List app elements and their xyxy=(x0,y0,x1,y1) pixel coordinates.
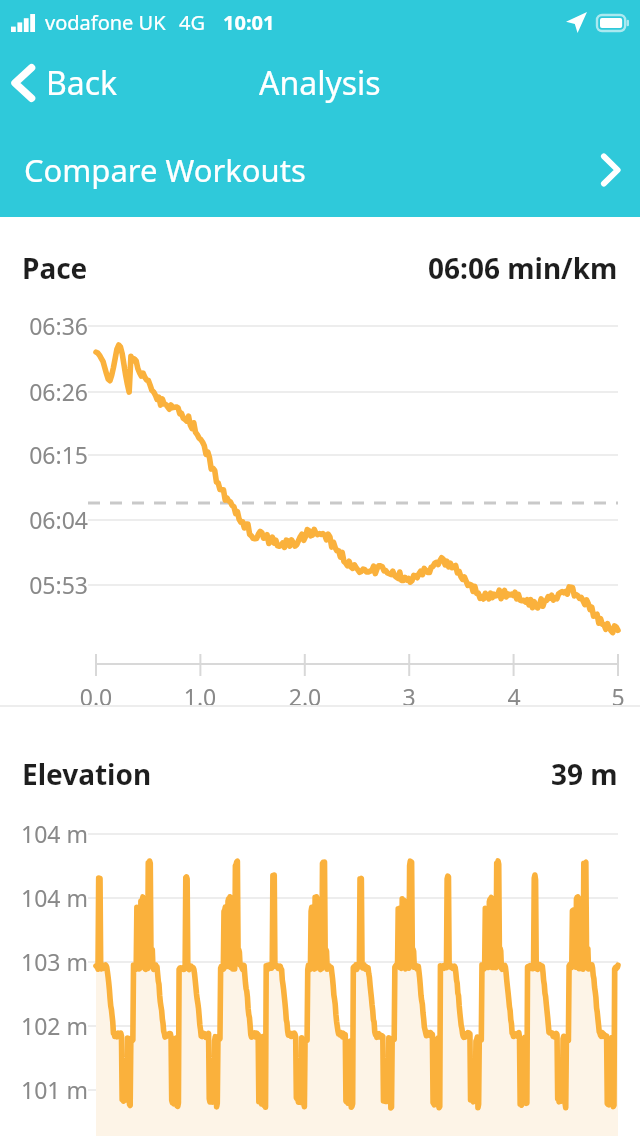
staticText: 10:01 xyxy=(223,9,275,36)
staticText: 06:36 xyxy=(16,310,88,341)
staticText: Analysis xyxy=(259,61,381,105)
staticText: 104 m xyxy=(10,882,88,913)
staticText: 2.0 xyxy=(275,681,335,712)
staticText: 0.0 xyxy=(66,681,126,712)
staticText: Pace xyxy=(22,249,88,287)
staticText: 3 xyxy=(379,681,439,712)
staticText: 101 m xyxy=(10,1074,88,1105)
staticText: 05:53 xyxy=(16,569,88,600)
staticText: Elevation xyxy=(22,755,152,793)
button[interactable]: Compare Workouts xyxy=(0,122,640,217)
staticText: 06:04 xyxy=(16,504,88,535)
staticText: 4G xyxy=(179,9,205,36)
staticText: 06:15 xyxy=(16,439,88,470)
staticText: 103 m xyxy=(10,946,88,977)
staticText: 06:26 xyxy=(16,376,88,407)
staticText: Back xyxy=(46,61,118,105)
staticText: 5 xyxy=(588,681,640,712)
staticText: 4 xyxy=(484,681,544,712)
staticText: 102 m xyxy=(10,1010,88,1041)
staticText: 1.0 xyxy=(170,681,230,712)
staticText: vodafone UK xyxy=(45,9,166,36)
staticText: 104 m xyxy=(10,818,88,849)
button[interactable]: Back xyxy=(12,61,118,105)
staticText: 39 m xyxy=(551,755,618,793)
staticText: Compare Workouts xyxy=(24,149,306,191)
staticText: 06:06 min/km xyxy=(428,249,618,287)
other: Compare Workouts xyxy=(601,153,620,187)
